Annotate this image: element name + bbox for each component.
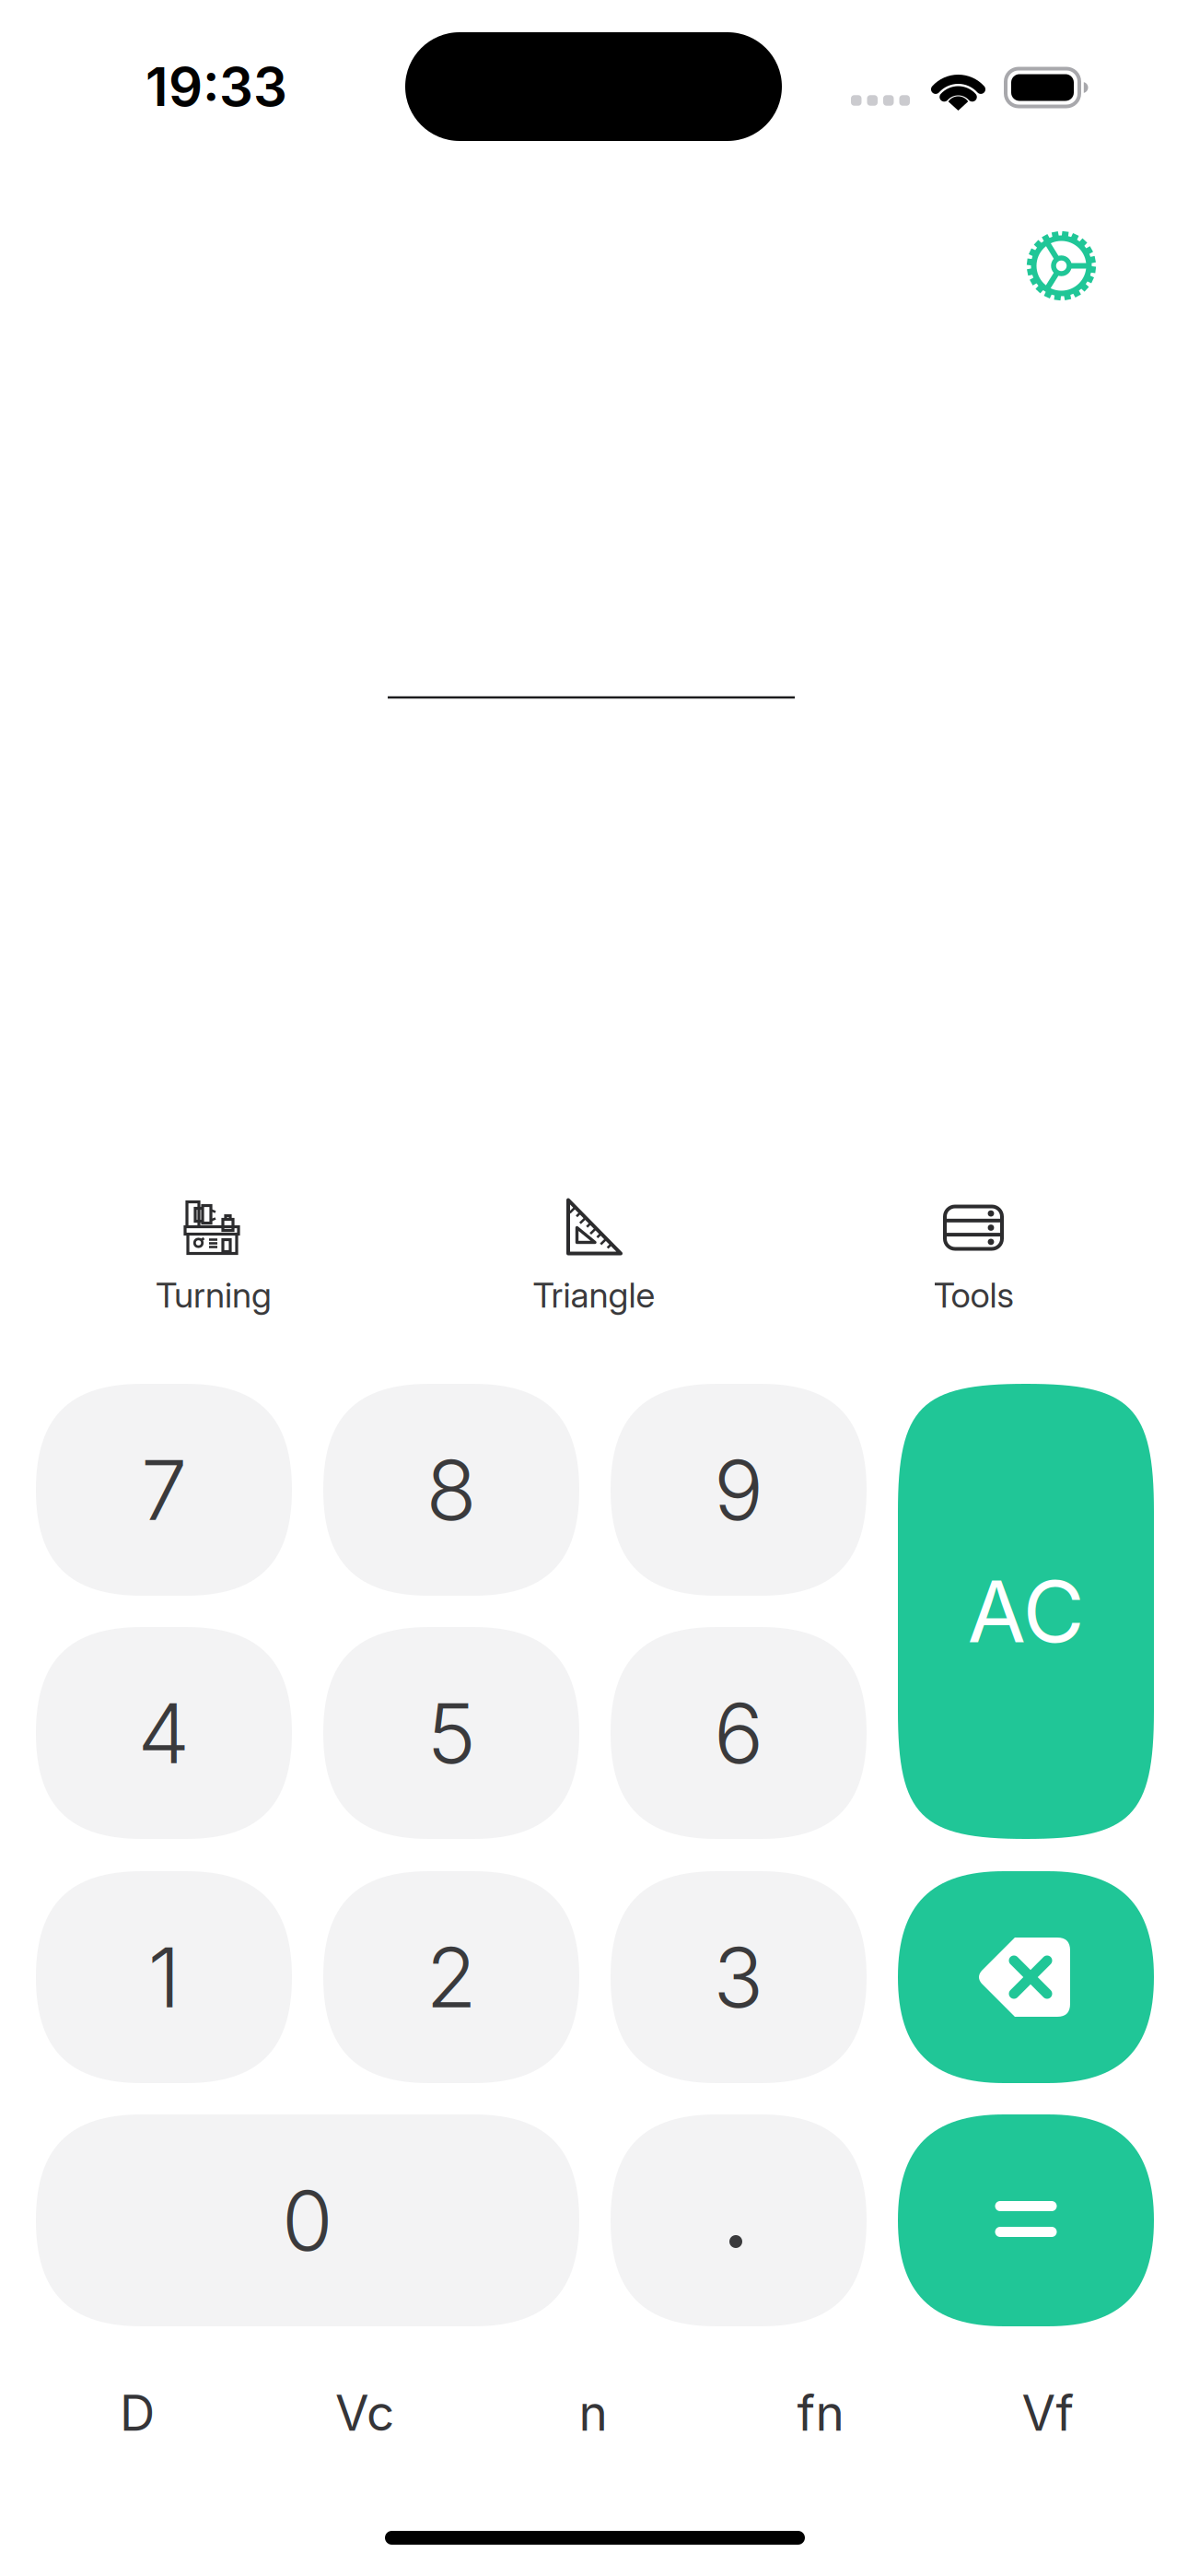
staticText: 6 <box>714 1683 763 1783</box>
button[interactable]: Vf <box>979 2367 1117 2459</box>
staticText: n <box>579 2383 607 2442</box>
staticText: 1 <box>148 1927 180 2027</box>
button[interactable]: Triangle <box>456 1195 732 1316</box>
staticText: 8 <box>426 1440 477 1540</box>
button[interactable]: AC <box>898 1384 1154 1839</box>
button[interactable]: 9 <box>611 1384 867 1596</box>
staticText: D <box>120 2383 155 2442</box>
button[interactable]: n <box>524 2367 662 2459</box>
staticText: Triangle <box>533 1274 655 1316</box>
staticText: Vc <box>335 2383 394 2442</box>
button[interactable]: Delete <box>898 1871 1154 2083</box>
button[interactable]: 2 <box>323 1871 579 2083</box>
staticText: 0 <box>282 2170 333 2271</box>
staticText: Tools <box>933 1274 1013 1316</box>
button[interactable]: fn <box>751 2367 890 2459</box>
button[interactable]: Decimal point <box>611 2114 867 2326</box>
staticText: 2 <box>426 1927 477 2027</box>
button[interactable]: 7 <box>36 1384 292 1596</box>
button[interactable]: Turning <box>76 1195 352 1316</box>
button[interactable]: 3 <box>611 1871 867 2083</box>
button[interactable]: Equals <box>898 2114 1154 2326</box>
button[interactable]: 4 <box>36 1627 292 1839</box>
staticText: Vf <box>1022 2383 1074 2442</box>
button[interactable]: 5 <box>323 1627 579 1839</box>
button[interactable]: Vc <box>296 2367 434 2459</box>
button[interactable]: Tools <box>835 1195 1112 1316</box>
staticText: 7 <box>141 1440 187 1540</box>
button[interactable]: D <box>68 2367 206 2459</box>
staticText: 4 <box>138 1683 190 1783</box>
staticText: 9 <box>714 1440 763 1540</box>
button[interactable]: 1 <box>36 1871 292 2083</box>
button[interactable]: 6 <box>611 1627 867 1839</box>
staticText: 3 <box>713 1927 764 2027</box>
staticText: 5 <box>427 1683 476 1783</box>
staticText: Turning <box>156 1274 272 1316</box>
staticText: 19:33 <box>146 54 287 119</box>
button[interactable]: Settings <box>1015 220 1107 312</box>
staticText: fn <box>797 2383 844 2442</box>
button[interactable]: 8 <box>323 1384 579 1596</box>
button[interactable]: 0 <box>36 2114 579 2326</box>
staticText: AC <box>967 1560 1084 1663</box>
